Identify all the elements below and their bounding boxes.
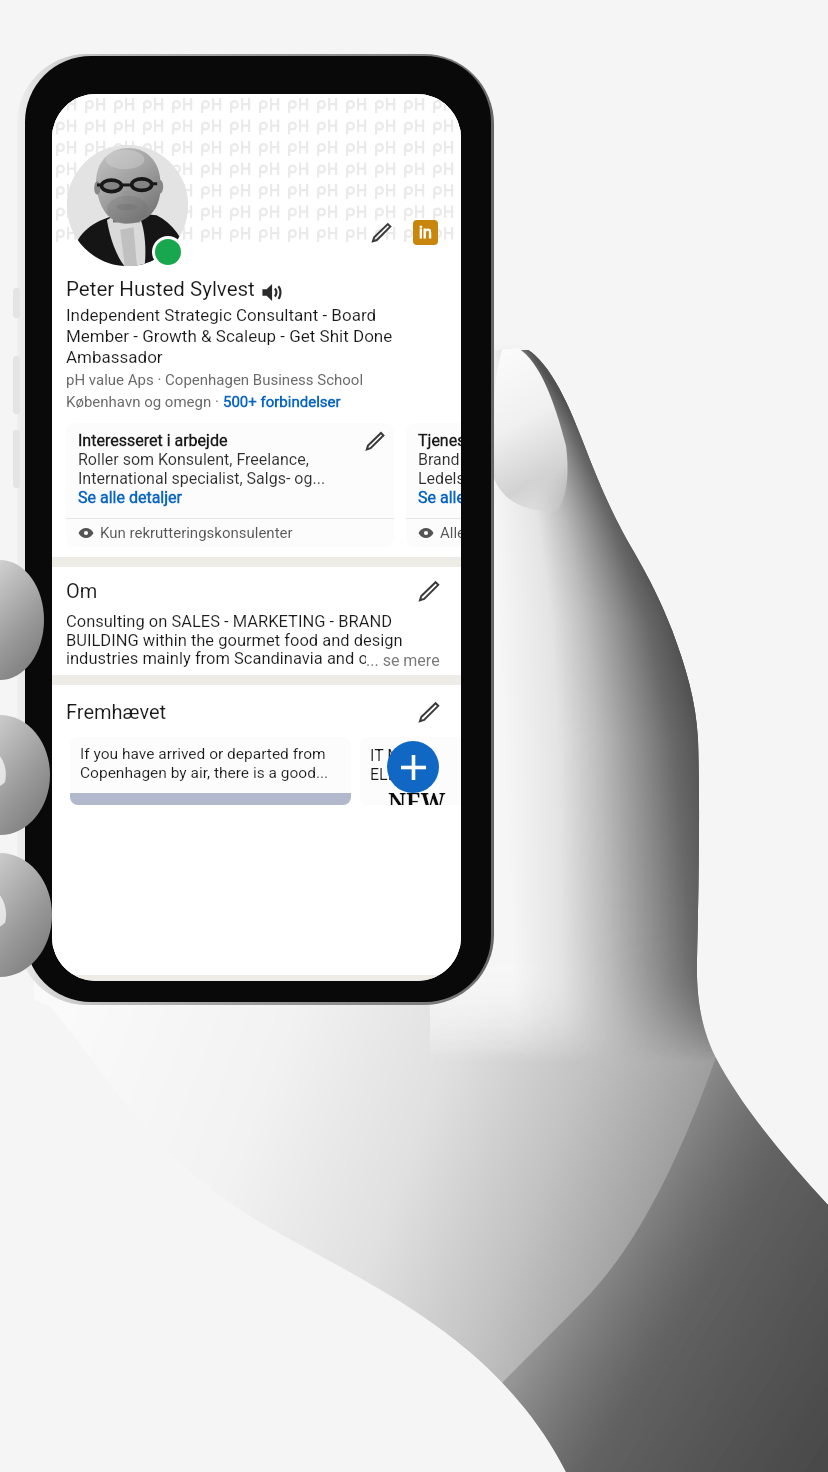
staticText: Kun rekrutteringskonsulenter (100, 524, 293, 542)
staticText: pH value Aps · Copenhagen Business Schoo… (66, 371, 364, 389)
staticText: IT MEDIA (370, 746, 436, 765)
staticText: Consulting on SALES - MARKETING - BRAND … (66, 612, 441, 668)
staticText: ELLER (370, 765, 416, 784)
button[interactable]: Se alle (418, 488, 461, 507)
button[interactable]: Peter Husted Sylvest (66, 277, 255, 301)
staticText: Tjenester (418, 431, 461, 450)
button[interactable]: Edit open to work (365, 431, 385, 451)
staticText: Alle (440, 524, 461, 542)
staticText: Branding, (418, 450, 461, 469)
staticText: København og omegn · (66, 393, 223, 411)
button[interactable]: Edit profile (371, 222, 392, 243)
button[interactable]: Fremhævet (66, 700, 167, 723)
button[interactable]: Tjenester (406, 423, 461, 547)
staticText: in (419, 223, 432, 242)
staticText: Independent Strategic Consultant - Board… (66, 305, 416, 367)
button[interactable]: IT MEDIA (360, 737, 461, 805)
staticText: Roller som Konsulent, Freelance, Interna… (78, 450, 365, 488)
staticText: If you have arrived or departed from Cop… (80, 745, 349, 782)
button[interactable]: ... se mere (366, 651, 440, 670)
button[interactable]: Interesseret i arbejde (66, 423, 394, 547)
button[interactable]: LinkedIn (413, 220, 438, 245)
button[interactable]: Se alle detaljer (78, 488, 182, 507)
button[interactable]: Play name pronunciation (262, 282, 283, 303)
button[interactable]: Om (66, 579, 98, 602)
staticText: Interesseret i arbejde (78, 431, 228, 450)
staticText: Ledelse (418, 469, 461, 488)
button[interactable]: Add (387, 741, 439, 793)
button[interactable]: Edit featured (418, 701, 440, 723)
button[interactable]: 500+ forbindelser (223, 393, 341, 411)
button[interactable]: Profile photo (67, 145, 188, 266)
button[interactable]: If you have arrived or departed from Cop… (70, 737, 351, 805)
staticText: NEW (388, 785, 446, 805)
button[interactable]: Edit about (418, 580, 440, 602)
